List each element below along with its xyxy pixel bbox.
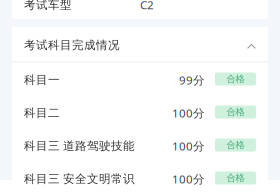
staticText: 100分	[172, 171, 205, 187]
staticText: 科目三 道路驾驶技能	[24, 139, 135, 153]
staticText: 合格	[226, 73, 244, 85]
staticText: 99分	[179, 72, 205, 88]
button[interactable]: 科目三 安全文明常识	[12, 161, 268, 194]
staticText: 合格	[226, 172, 244, 184]
staticText: 科目三 安全文明常识	[24, 172, 135, 186]
button[interactable]: 考试科目完成情况	[12, 27, 268, 61]
staticText: 科目二	[24, 106, 60, 120]
staticText: 100分	[172, 105, 205, 121]
staticText: 合格	[226, 139, 244, 151]
staticText: C2	[140, 0, 154, 13]
button[interactable]: 科目一	[12, 62, 268, 95]
staticText: 合格	[226, 106, 244, 118]
staticText: 100分	[172, 138, 205, 154]
button[interactable]: 考试车型	[0, 0, 280, 19]
button[interactable]: 科目二	[12, 95, 268, 128]
staticText: 考试车型	[24, 0, 72, 12]
staticText: 科目一	[24, 73, 60, 87]
staticText: 考试科目完成情况	[24, 38, 120, 52]
button[interactable]: 科目三 道路驾驶技能	[12, 128, 268, 161]
